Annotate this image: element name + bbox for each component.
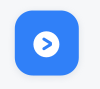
button[interactable]: Continue	[15, 10, 79, 75]
